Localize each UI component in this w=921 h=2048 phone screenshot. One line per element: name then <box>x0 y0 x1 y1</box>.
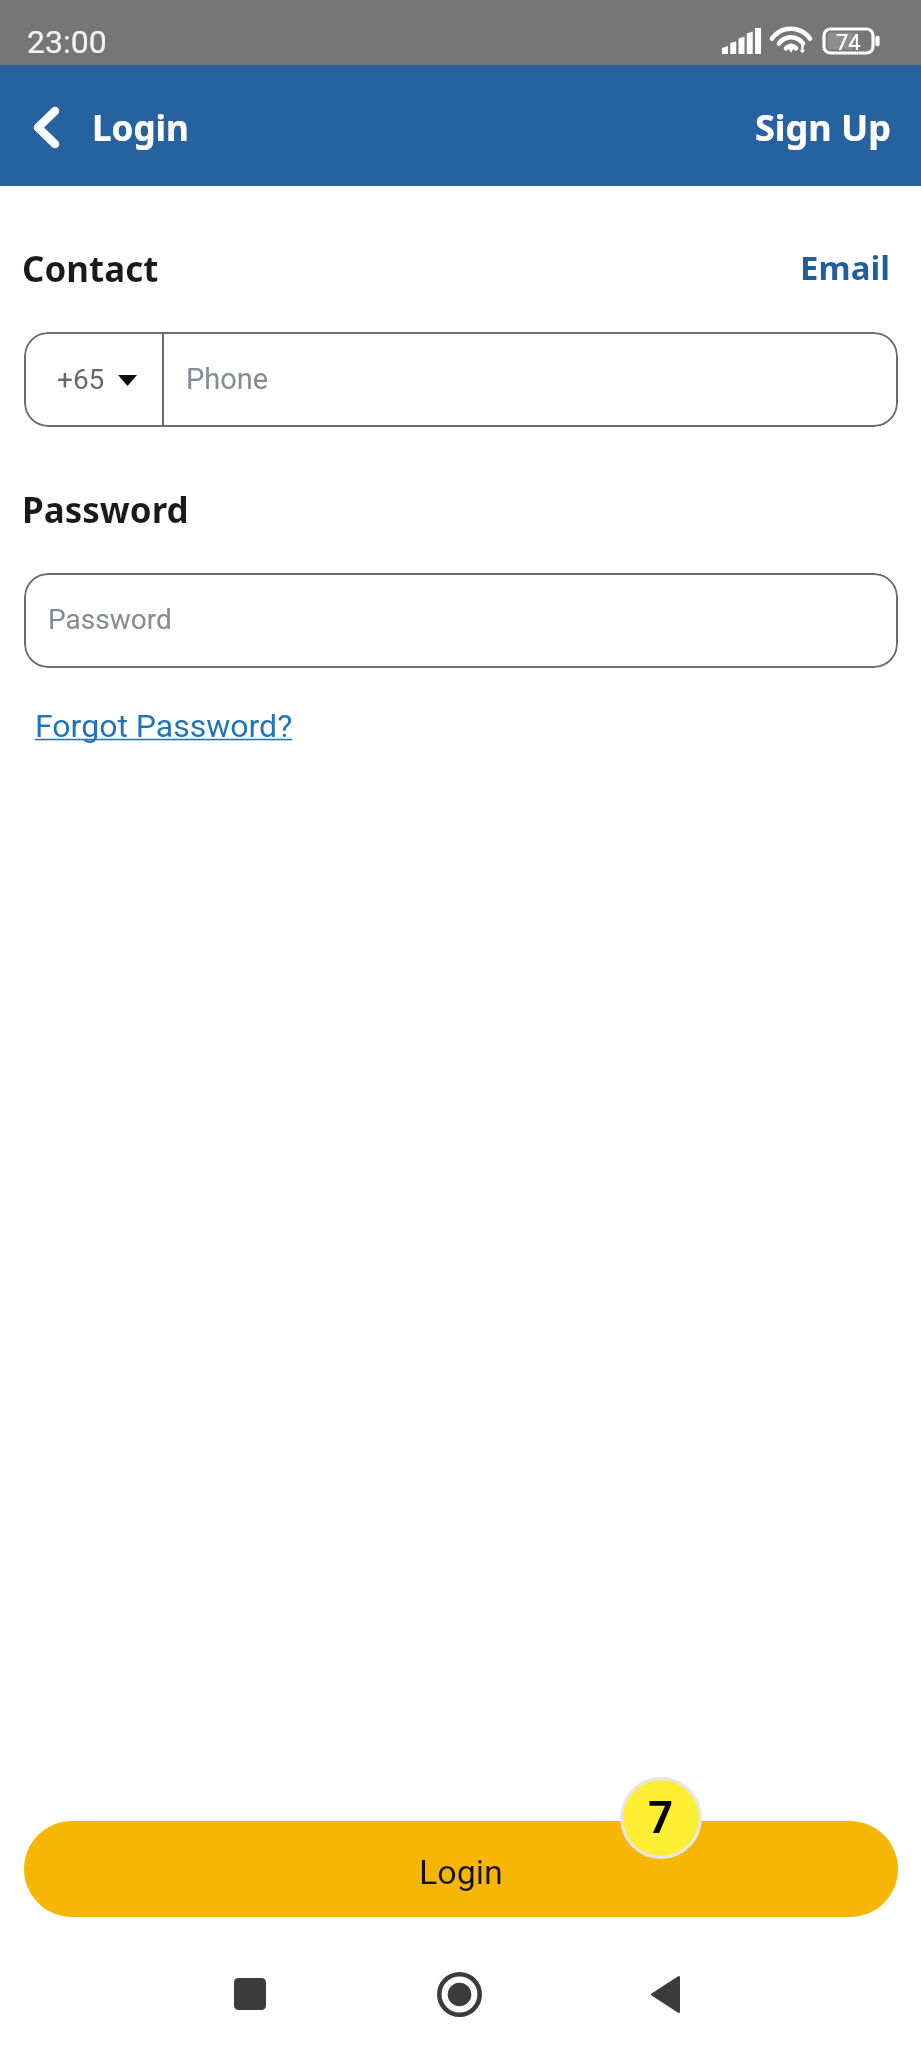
button[interactable]: Login <box>24 1821 898 1917</box>
button[interactable]: Recent apps <box>190 1934 310 2048</box>
button[interactable]: Forgot Password? <box>35 707 293 745</box>
button[interactable]: Country code +65 <box>24 332 162 427</box>
button[interactable]: Email <box>774 237 891 297</box>
staticText: 23:00 <box>27 23 107 61</box>
staticText: Password <box>22 486 189 534</box>
staticText: Login <box>419 1852 503 1892</box>
staticText: 74 <box>836 30 861 54</box>
staticText: Forgot Password? <box>35 707 293 745</box>
staticText: Phone <box>186 362 269 396</box>
staticText: +65 <box>57 363 105 396</box>
staticText: Sign Up <box>755 103 892 152</box>
staticText: Email <box>800 245 891 290</box>
button[interactable]: Phone <box>164 332 898 427</box>
staticText: Login <box>92 104 189 152</box>
button[interactable]: Home <box>399 1934 519 2048</box>
button[interactable]: Sign Up <box>723 67 921 188</box>
button[interactable]: 7 <box>623 1780 699 1856</box>
staticText: 7 <box>648 1792 674 1844</box>
button[interactable]: Back <box>605 1934 725 2048</box>
staticText: Password <box>48 603 172 636</box>
button[interactable]: Back <box>0 67 209 188</box>
button[interactable]: Password <box>24 573 898 668</box>
staticText: Contact <box>22 245 159 293</box>
